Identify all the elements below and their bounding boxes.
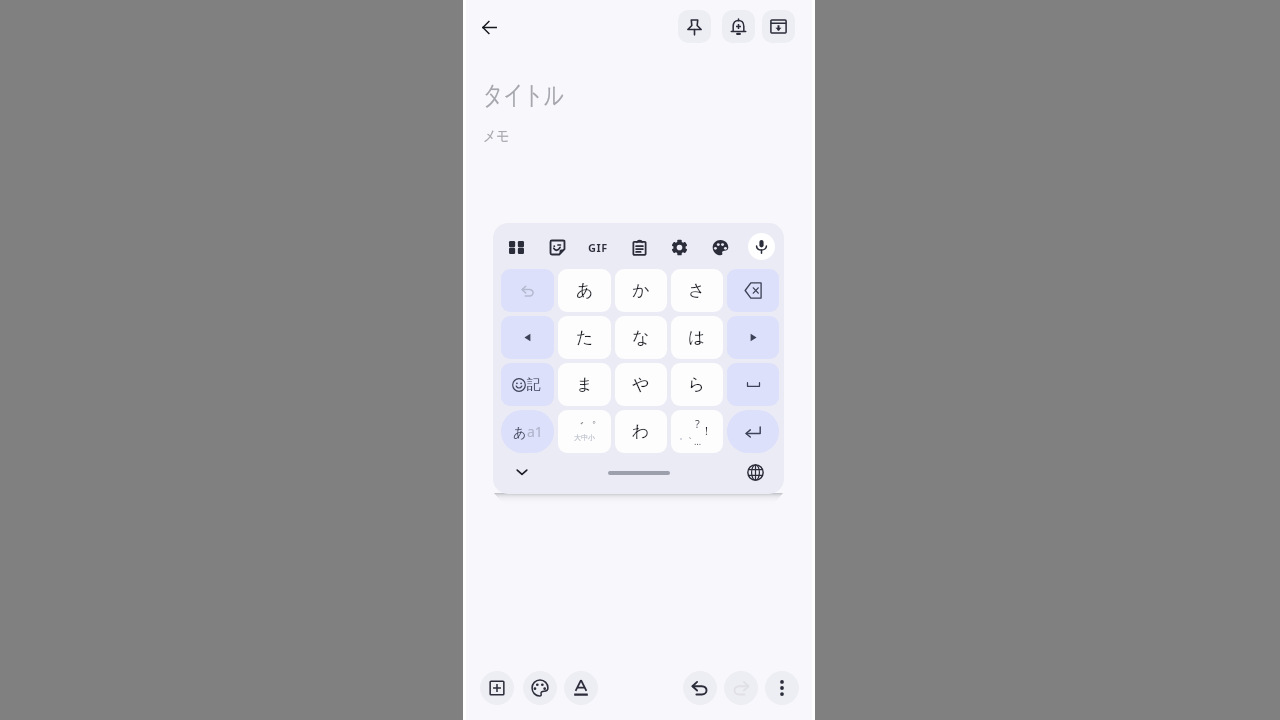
staticText: タイトル [483, 79, 564, 112]
staticText: GIF [588, 240, 608, 255]
button[interactable]: Archive [762, 10, 795, 43]
staticText: あ [513, 424, 527, 440]
button[interactable]: More options [765, 671, 799, 705]
button[interactable]: Hide keyboard [508, 458, 536, 486]
button[interactable]: た [558, 316, 611, 359]
button[interactable]: は [671, 316, 723, 359]
button[interactable]: Space [727, 363, 779, 406]
button[interactable]: Enter [727, 410, 779, 453]
button[interactable]: Reminder [722, 10, 755, 43]
button[interactable]: わ [615, 410, 667, 453]
button[interactable]: Move cursor right [727, 316, 779, 359]
button[interactable]: Move cursor left [501, 316, 554, 359]
button[interactable]: Emoji and symbols [501, 363, 554, 406]
button[interactable]: Background options [523, 671, 557, 705]
button[interactable]: Add [480, 671, 514, 705]
button[interactable]: Voice input [748, 233, 775, 260]
button[interactable]: Undo [501, 269, 554, 312]
staticText: 大中小 [574, 433, 595, 442]
staticText: や [632, 374, 650, 395]
staticText: ? [695, 416, 700, 431]
staticText: わ [632, 421, 650, 442]
staticText: ま [576, 374, 594, 395]
button[interactable]: な [615, 316, 667, 359]
button[interactable]: Redo [724, 671, 758, 705]
button[interactable]: ま [558, 363, 611, 406]
staticText: は [688, 327, 706, 348]
staticText: 、 [688, 429, 697, 440]
button[interactable]: Backspace [727, 269, 779, 312]
staticText: た [576, 327, 594, 348]
button[interactable]: さ [671, 269, 723, 312]
staticText: か [632, 280, 650, 301]
button[interactable]: GIF [585, 234, 611, 260]
button[interactable]: Stickers [544, 234, 570, 260]
button[interactable]: Apps [503, 234, 529, 260]
button[interactable]: Dakuten [558, 410, 611, 453]
button[interactable]: Pin [678, 10, 711, 43]
button[interactable]: Change language [741, 458, 769, 486]
staticText: ! [705, 423, 708, 438]
button[interactable]: Back [470, 8, 508, 46]
button[interactable]: Undo [683, 671, 717, 705]
staticText: メモ [483, 127, 510, 146]
staticText: ゛゜ [572, 419, 597, 434]
button[interactable]: か [615, 269, 667, 312]
staticText: あ [576, 280, 594, 301]
button[interactable]: ら [671, 363, 723, 406]
staticText: な [632, 327, 650, 348]
button[interactable]: Clipboard [626, 234, 652, 260]
button[interactable]: Settings [666, 234, 692, 260]
staticText: 。 [679, 430, 688, 441]
staticText: 記 [527, 376, 541, 394]
staticText: ら [688, 374, 706, 395]
button[interactable]: Switch input mode [501, 410, 554, 453]
button[interactable]: あ [558, 269, 611, 312]
staticText: a1 [527, 422, 543, 441]
button[interactable]: Theme [707, 234, 733, 260]
button[interactable]: Formatting [564, 671, 598, 705]
staticText: … [694, 435, 702, 447]
button[interactable]: Punctuation [671, 410, 723, 453]
button[interactable]: や [615, 363, 667, 406]
staticText: さ [688, 280, 706, 301]
